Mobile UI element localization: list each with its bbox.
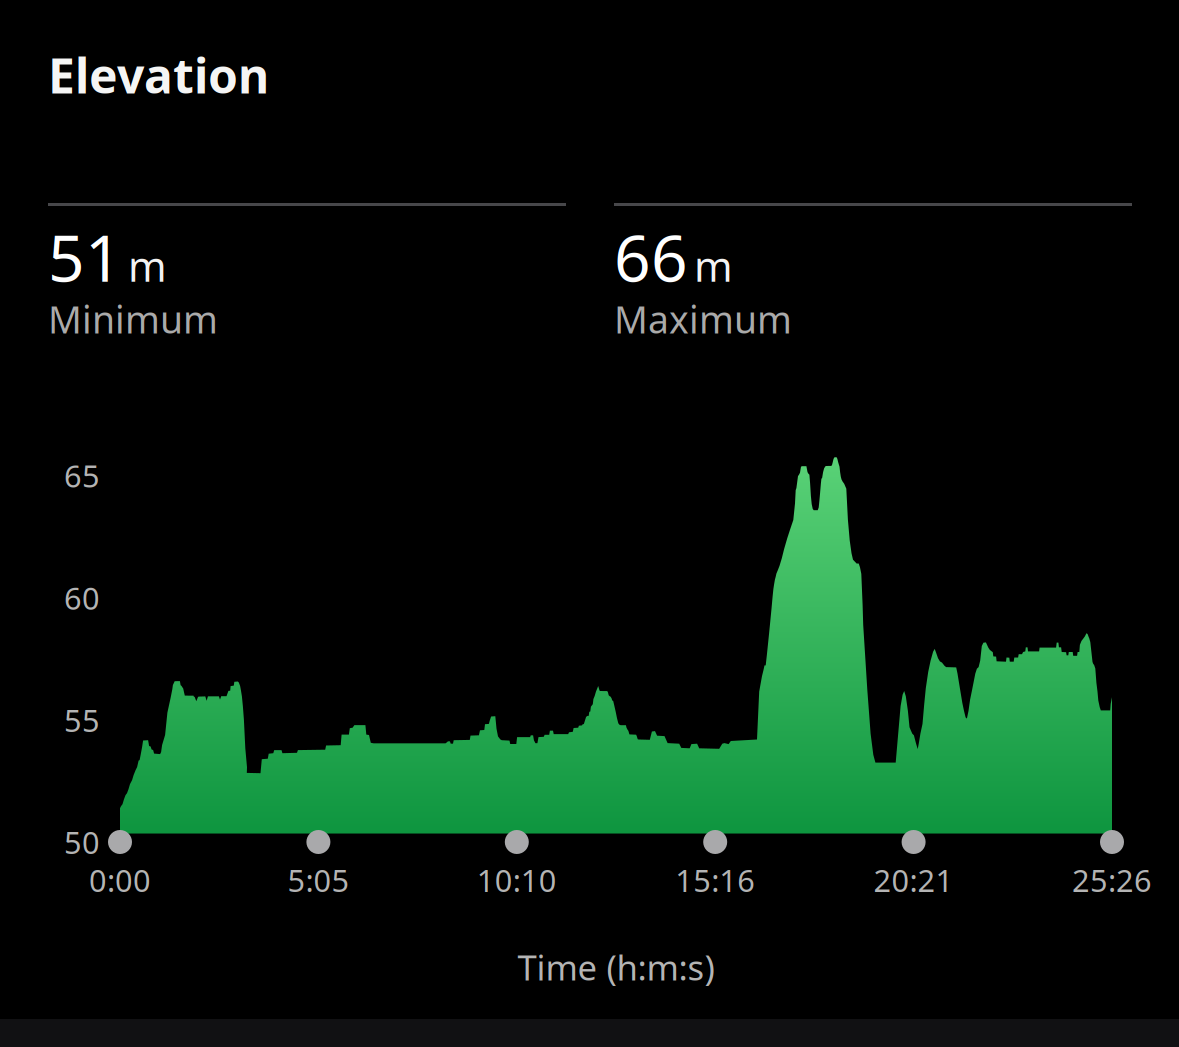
staticText: 65 xyxy=(64,455,100,496)
staticText: 0:00 xyxy=(89,860,151,900)
staticText: 15:16 xyxy=(675,860,755,900)
staticText: 25:26 xyxy=(1072,860,1152,900)
staticText: 10:10 xyxy=(477,860,557,900)
staticText: 60 xyxy=(64,577,100,618)
staticText: 50 xyxy=(64,822,100,862)
staticText: Minimum xyxy=(48,294,218,344)
staticText: Time (h:m:s) xyxy=(517,944,714,990)
button[interactable]: Elevation chart xyxy=(120,455,1112,833)
staticText: 51 xyxy=(48,214,122,299)
staticText: Maximum xyxy=(614,294,792,344)
staticText: 5:05 xyxy=(287,860,349,900)
staticText: Elevation xyxy=(48,43,269,107)
staticText: 55 xyxy=(64,700,100,740)
staticText: m xyxy=(128,238,167,293)
staticText: m xyxy=(694,238,733,293)
staticText: 20:21 xyxy=(874,860,954,900)
staticText: 66 xyxy=(614,214,688,299)
